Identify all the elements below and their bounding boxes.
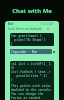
button[interactable]: Copy code · Run <box>10 49 52 54</box>
staticText: } <box>11 42 13 46</box>
staticText: } <box>11 78 13 82</box>
staticText: factor as needed. <box>11 96 42 100</box>
staticText: This prints each value <box>11 84 51 88</box>
staticText: You can change the <box>11 92 44 96</box>
staticText: Sure, here's an example: <box>8 27 43 31</box>
staticText: fun greet(name) { <box>11 34 42 38</box>
staticText: 10:24 AM <box>40 22 54 26</box>
staticText: val list = listOf(1, 2, 3) <box>11 62 54 70</box>
staticText: list.forEach { item -> <box>11 70 51 74</box>
staticText: println(item * 2) <box>11 74 48 78</box>
staticText: Chat with Me <box>12 7 52 15</box>
button[interactable]: fun greet(name) { <box>10 33 54 46</box>
staticText: print("Hi $name") <box>11 38 46 42</box>
button[interactable]: Bot <box>5 21 59 100</box>
staticText: Bot <box>8 22 14 26</box>
staticText: doubled to the console. <box>11 88 53 92</box>
button[interactable]: val list = listOf(1, 2, 3) <box>10 61 54 100</box>
staticText: Copy code · Run <box>10 50 38 54</box>
